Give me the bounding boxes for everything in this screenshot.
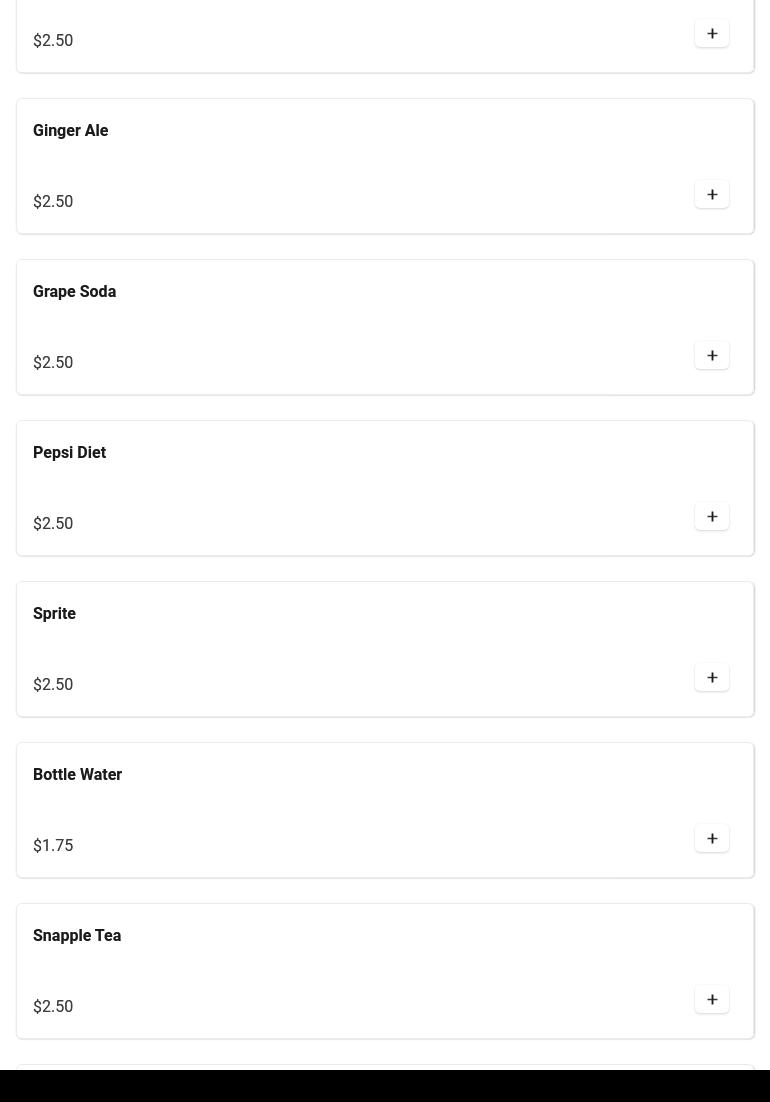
button[interactable]: Snapple Tea (16, 903, 754, 1039)
button[interactable]: Grape Soda (16, 259, 754, 395)
button[interactable]: Add item to order (695, 180, 729, 208)
button[interactable]: Pepsi Diet (16, 420, 754, 556)
staticText: Snapple Tea (33, 926, 122, 945)
staticText: Sprite (33, 604, 76, 623)
staticText: Grape Soda (33, 282, 117, 301)
staticText: $2.50 (33, 675, 74, 694)
button[interactable]: Add item to order (695, 663, 729, 691)
staticText: Grape Soda (33, 282, 117, 301)
staticText: Pepsi Diet (33, 443, 107, 462)
button[interactable]: Pepsi (16, 0, 754, 73)
staticText: $2.50 (33, 675, 74, 694)
button[interactable]: Add item to order (695, 824, 729, 852)
staticText: $2.50 (33, 997, 74, 1016)
staticText: Sprite (33, 604, 76, 623)
staticText: $1.75 (33, 836, 74, 855)
button[interactable]: Add item to order (695, 985, 729, 1013)
staticText: $2.50 (33, 31, 74, 50)
staticText: Bottle Water (33, 765, 123, 784)
staticText: Ginger Ale (33, 121, 109, 140)
staticText: $2.50 (33, 353, 74, 372)
button[interactable]: Add item to order (695, 19, 729, 47)
staticText: $2.50 (33, 192, 74, 211)
button[interactable]: Add item to order (695, 502, 729, 530)
staticText: Bottle Water (33, 765, 123, 784)
staticText: $2.50 (33, 31, 74, 50)
staticText: Pepsi Diet (33, 443, 107, 462)
staticText: $2.50 (33, 514, 74, 533)
staticText: $2.50 (33, 514, 74, 533)
staticText: $2.50 (33, 353, 74, 372)
staticText: $2.50 (33, 997, 74, 1016)
staticText: $2.50 (33, 192, 74, 211)
button[interactable]: Ginger Ale (16, 98, 754, 234)
button[interactable]: Bottle Water (16, 742, 754, 878)
button[interactable]: Lemonade (16, 1064, 754, 1070)
button[interactable]: Sprite (16, 581, 754, 717)
button[interactable]: Add item to order (695, 341, 729, 369)
staticText: Ginger Ale (33, 121, 109, 140)
staticText: Snapple Tea (33, 926, 122, 945)
staticText: $1.75 (33, 836, 74, 855)
